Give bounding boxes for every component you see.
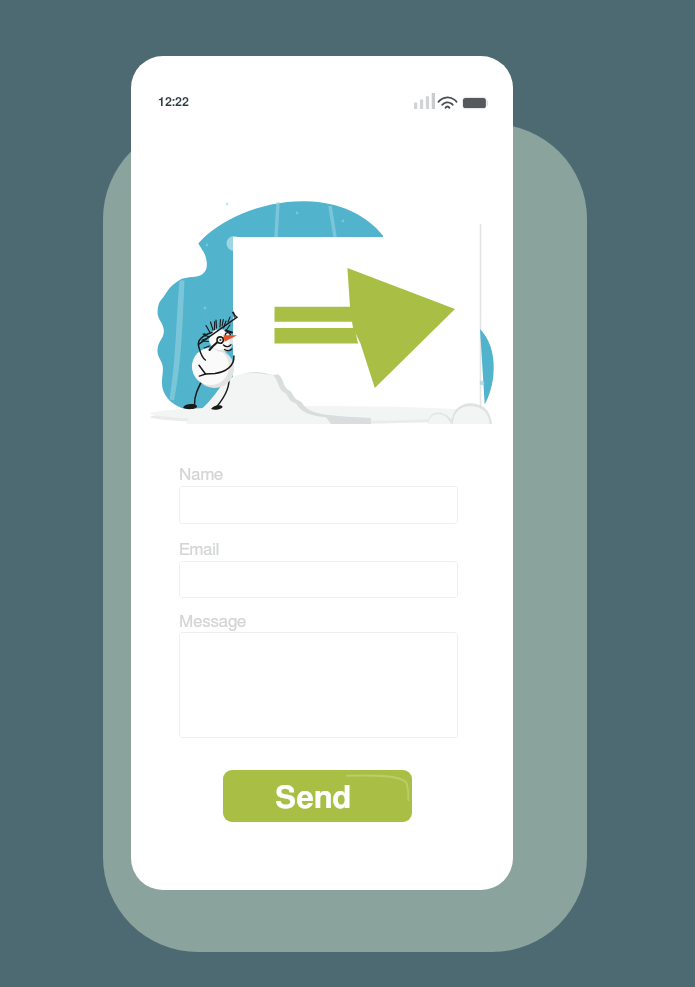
staticText: 12:22 <box>158 96 189 109</box>
staticText: Name <box>179 466 224 483</box>
button[interactable]: Send <box>223 770 412 822</box>
button[interactable] <box>179 486 458 524</box>
other: Wi-Fi <box>440 97 455 109</box>
staticText: Send <box>275 783 352 814</box>
staticText: Email <box>179 541 220 558</box>
other: Battery <box>463 98 488 108</box>
other: Signal strength <box>414 93 435 109</box>
staticText: Message <box>179 613 247 630</box>
button[interactable] <box>179 561 458 598</box>
